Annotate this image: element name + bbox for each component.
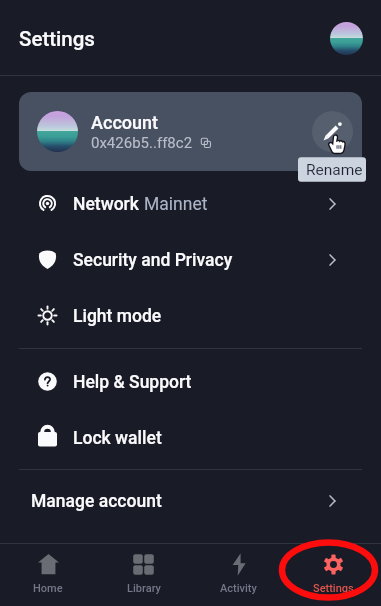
- staticText: Rename: [306, 161, 363, 179]
- button[interactable]: Manage account: [0, 473, 381, 529]
- staticText: Help & Support: [73, 372, 192, 393]
- staticText: Lock wallet: [73, 428, 162, 449]
- staticText: Network: [73, 194, 139, 215]
- staticText: Settings: [313, 582, 354, 595]
- button[interactable]: Account: [19, 92, 362, 171]
- button[interactable]: Library: [96, 544, 191, 606]
- staticText: Account: [91, 112, 159, 133]
- staticText: Home: [33, 582, 63, 595]
- staticText: Mainnet: [144, 194, 208, 215]
- button[interactable]: Lock wallet: [0, 410, 381, 466]
- button[interactable]: Home: [0, 544, 96, 606]
- button[interactable]: Settings: [286, 544, 381, 606]
- button[interactable]: Help & Support: [0, 354, 381, 410]
- staticText: 0x426b5..ff8c2: [91, 134, 193, 152]
- staticText: Light mode: [73, 306, 162, 327]
- button[interactable]: Activity: [191, 544, 286, 606]
- staticText: Activity: [220, 582, 257, 595]
- button[interactable]: Network: [0, 176, 381, 232]
- button[interactable]: Light mode: [0, 288, 381, 344]
- button[interactable]: Security and Privacy: [0, 232, 381, 288]
- staticText: Library: [127, 582, 161, 595]
- button[interactable]: Profile: [330, 22, 363, 55]
- staticText: Security and Privacy: [73, 250, 233, 271]
- staticText: Manage account: [31, 491, 162, 512]
- staticText: Settings: [19, 27, 95, 51]
- button[interactable]: Rename: [312, 111, 353, 152]
